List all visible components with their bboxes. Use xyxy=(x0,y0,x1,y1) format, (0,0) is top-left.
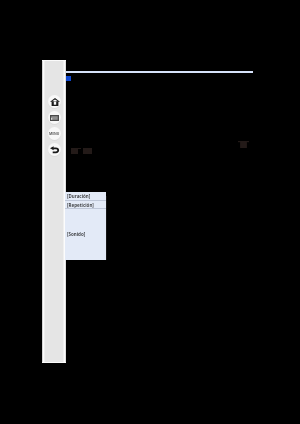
button[interactable]: [Sonido] xyxy=(65,209,106,260)
button[interactable]: Back xyxy=(48,143,61,156)
staticText: [Sonido] xyxy=(67,231,86,237)
staticText: [Duración] xyxy=(67,193,91,199)
button[interactable]: Menu xyxy=(48,127,61,140)
staticText: MENU xyxy=(49,131,60,136)
staticText: [Repetición] xyxy=(67,202,94,208)
button[interactable]: [Duración] xyxy=(65,192,106,200)
button[interactable]: Home xyxy=(48,95,61,108)
button[interactable]: [Repetición] xyxy=(65,201,106,208)
button[interactable]: Screen xyxy=(48,111,61,124)
